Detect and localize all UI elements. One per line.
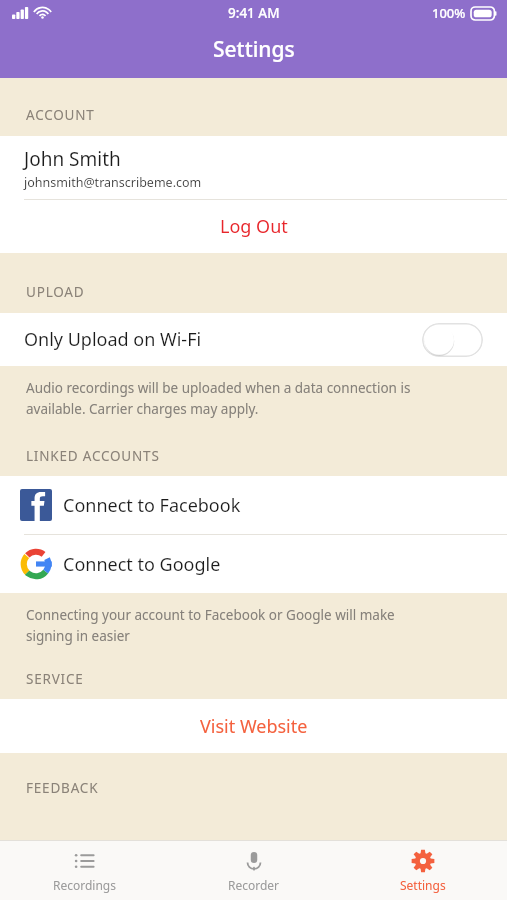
staticText: signing in easier (26, 627, 130, 645)
staticText: Log Out (220, 214, 288, 239)
button[interactable]: Visit Website (0, 699, 507, 753)
staticText: FEEDBACK (26, 779, 99, 797)
staticText: ACCOUNT (26, 106, 95, 124)
staticText: Only Upload on Wi-Fi (24, 327, 202, 352)
staticText: Recordings (53, 877, 116, 893)
staticText: LINKED ACCOUNTS (26, 447, 160, 465)
button[interactable]: Only Upload on Wi-Fi (0, 313, 507, 366)
staticText: Audio recordings will be uploaded when a… (26, 379, 411, 397)
button[interactable]: Only Upload on Wi-Fi toggle (422, 323, 483, 357)
button[interactable]: John Smith (0, 136, 507, 199)
staticText: SERVICE (26, 670, 84, 688)
staticText: 9:41 AM (228, 4, 280, 22)
staticText: Settings (213, 35, 295, 64)
staticText: Connect to Google (63, 552, 221, 577)
staticText: available. Carrier charges may apply. (26, 400, 259, 418)
button[interactable]: Connect to Facebook (0, 476, 507, 534)
staticText: 100% (432, 4, 466, 22)
button[interactable]: Log Out (0, 200, 507, 253)
button[interactable]: Recorder (169, 841, 338, 900)
staticText: UPLOAD (26, 283, 85, 301)
staticText: johnsmith@transcribeme.com (24, 174, 202, 191)
button[interactable]: Recordings (0, 841, 169, 900)
staticText: Connecting your account to Facebook or G… (26, 606, 395, 624)
staticText: Connect to Facebook (63, 493, 241, 518)
staticText: John Smith (24, 146, 121, 172)
button[interactable]: Settings (338, 841, 507, 900)
staticText: Recorder (228, 877, 280, 893)
button[interactable]: Connect to Google (0, 535, 507, 593)
staticText: Visit Website (200, 714, 308, 739)
staticText: Settings (400, 877, 446, 893)
